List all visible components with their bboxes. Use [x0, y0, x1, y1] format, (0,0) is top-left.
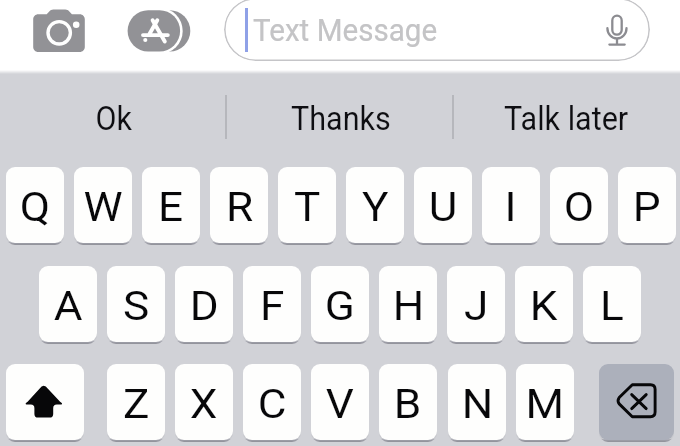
button[interactable]: Camera [28, 4, 92, 60]
button[interactable]: X [175, 364, 233, 440]
staticText: V [326, 380, 354, 427]
staticText: Y [362, 183, 389, 230]
button[interactable] [224, 0, 650, 61]
staticText: Thanks [291, 99, 391, 138]
staticText: N [462, 380, 493, 427]
staticText: O [564, 183, 594, 230]
button[interactable]: Thanks [227, 71, 454, 161]
staticText: J [464, 282, 489, 329]
staticText: S [123, 282, 150, 329]
button[interactable]: I [482, 167, 540, 243]
staticText: Text Message [253, 12, 437, 48]
button[interactable]: H [379, 266, 437, 342]
button[interactable]: Dictate [600, 6, 642, 54]
staticText: X [190, 380, 218, 427]
staticText: Talk later [504, 99, 629, 138]
staticText: B [394, 380, 422, 427]
button[interactable]: W [74, 167, 132, 243]
button[interactable]: D [175, 266, 233, 342]
button[interactable]: F [243, 266, 301, 342]
button[interactable]: T [278, 167, 336, 243]
button[interactable]: M [516, 364, 574, 440]
staticText: A [54, 282, 83, 329]
staticText: P [633, 183, 661, 230]
staticText: L [600, 282, 624, 329]
button[interactable]: Q [6, 167, 64, 243]
staticText: K [530, 282, 558, 329]
button[interactable]: G [311, 266, 369, 342]
staticText: F [260, 282, 285, 329]
staticText: I [504, 183, 518, 230]
staticText: G [325, 282, 355, 329]
button[interactable]: A [39, 266, 97, 342]
button[interactable]: B [379, 364, 437, 440]
button[interactable]: O [550, 167, 608, 243]
staticText: Z [123, 380, 150, 427]
staticText: H [393, 282, 424, 329]
staticText: D [190, 282, 219, 329]
button[interactable]: R [210, 167, 268, 243]
button[interactable]: E [142, 167, 200, 243]
button[interactable]: Talk later [453, 71, 680, 161]
button[interactable]: L [583, 266, 641, 342]
button[interactable]: U [414, 167, 472, 243]
staticText: Q [20, 183, 50, 230]
button[interactable]: J [447, 266, 505, 342]
button[interactable]: V [311, 364, 369, 440]
button[interactable]: Shift [6, 364, 84, 440]
button[interactable]: N [448, 364, 506, 440]
button[interactable]: P [618, 167, 676, 243]
staticText: R [226, 183, 253, 230]
button[interactable]: Backspace [599, 364, 674, 440]
staticText: E [158, 183, 184, 230]
button[interactable]: K [515, 266, 573, 342]
staticText: Ok [95, 99, 132, 138]
button[interactable]: App Store [122, 4, 196, 60]
staticText: W [83, 183, 123, 230]
staticText: T [294, 183, 321, 230]
staticText: C [258, 380, 287, 427]
button[interactable]: Y [346, 167, 404, 243]
button[interactable]: C [243, 364, 301, 440]
staticText: U [429, 183, 458, 230]
button[interactable]: Ok [0, 71, 227, 161]
button[interactable]: S [107, 266, 165, 342]
button[interactable]: Z [107, 364, 165, 440]
staticText: M [525, 380, 565, 427]
